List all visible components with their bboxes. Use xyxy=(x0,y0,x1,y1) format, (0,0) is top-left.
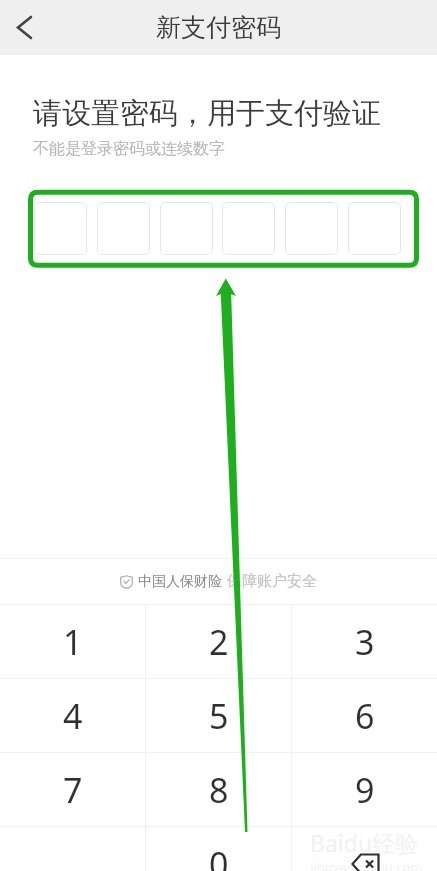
button[interactable]: 7 xyxy=(0,753,145,826)
staticText: 6 xyxy=(355,693,375,739)
other: Delete xyxy=(343,848,387,871)
button[interactable]: 2 xyxy=(146,605,291,678)
button[interactable] xyxy=(285,202,338,255)
staticText: 5 xyxy=(209,693,229,739)
staticText: 8 xyxy=(209,767,229,813)
button[interactable]: 8 xyxy=(146,753,291,826)
button[interactable]: 0 xyxy=(146,827,291,871)
staticText: 7 xyxy=(63,767,83,813)
button[interactable] xyxy=(348,202,401,255)
staticText: Baidu经验 xyxy=(310,827,419,858)
staticText: jingyan.baidu.com xyxy=(310,858,423,871)
button[interactable]: 1 xyxy=(0,605,145,678)
staticText: 不能是登录密码或连续数字 xyxy=(33,139,225,159)
staticText: 保障账户安全 xyxy=(227,572,317,591)
button[interactable]: 4 xyxy=(0,679,145,752)
button[interactable]: 5 xyxy=(146,679,291,752)
staticText: 4 xyxy=(63,693,83,739)
staticText: 9 xyxy=(355,767,375,813)
staticText: 1 xyxy=(63,619,83,665)
staticText: 3 xyxy=(355,619,375,665)
button[interactable]: 6 xyxy=(292,679,437,752)
staticText: 2 xyxy=(209,619,229,665)
staticText: 中国人保财险 xyxy=(138,573,222,591)
button[interactable] xyxy=(97,202,150,255)
button[interactable]: 9 xyxy=(292,753,437,826)
button[interactable]: Delete xyxy=(292,827,437,871)
staticText: 0 xyxy=(209,841,229,871)
staticText: 新支付密码 xyxy=(156,12,281,43)
button[interactable] xyxy=(160,202,213,255)
button[interactable]: 3 xyxy=(292,605,437,678)
button[interactable]: Back xyxy=(0,2,48,53)
staticText: 请设置密码，用于支付验证 xyxy=(33,95,381,132)
button[interactable] xyxy=(34,202,87,255)
button[interactable] xyxy=(222,202,275,255)
